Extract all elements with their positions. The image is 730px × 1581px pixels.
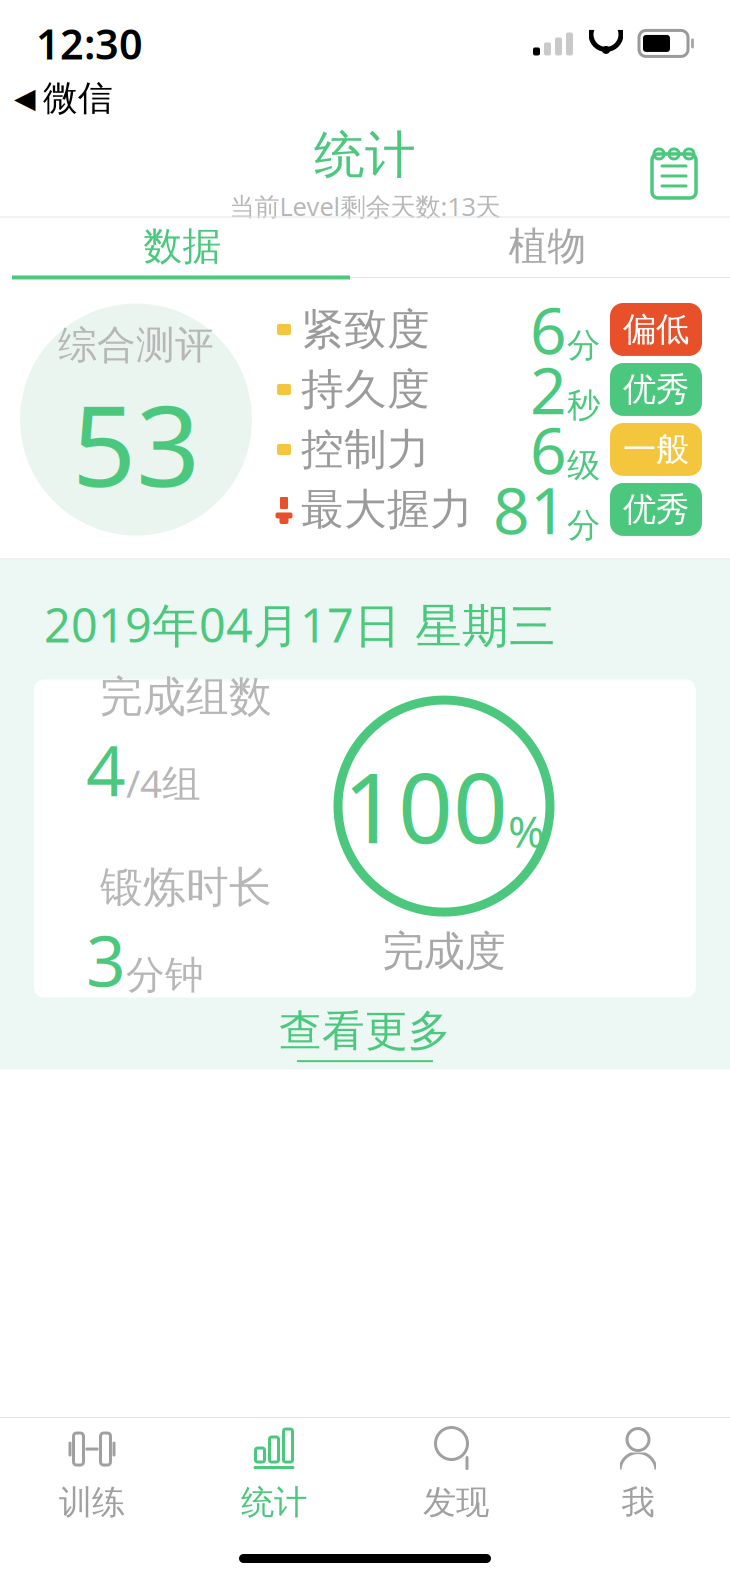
staticText: 完成组数 <box>100 671 272 723</box>
button[interactable]: 数据 <box>0 217 365 275</box>
button[interactable]: 发现 <box>365 1418 547 1530</box>
button[interactable]: 训练 <box>1 1418 183 1530</box>
staticText: 统计 <box>241 1482 307 1523</box>
staticText: 发现 <box>423 1482 489 1523</box>
staticText: 我 <box>621 1482 654 1523</box>
staticText: 级 <box>567 445 600 486</box>
staticText: 优秀 <box>623 369 689 410</box>
staticText: 4 <box>86 723 126 815</box>
staticText: 12:30 <box>36 16 143 71</box>
staticText: 植物 <box>508 223 586 270</box>
staticText: 当前Level剩余天数:13天 <box>229 189 500 223</box>
staticText: 3 <box>86 914 126 1006</box>
button[interactable]: 统计 <box>183 1418 365 1530</box>
staticText: 综合测评 <box>58 321 214 369</box>
staticText: 数据 <box>143 223 221 270</box>
staticText: 优秀 <box>623 489 689 530</box>
staticText: 2019年04月17日 星期三 <box>44 593 556 655</box>
staticText: 分 <box>567 505 600 546</box>
staticText: 统计 <box>314 124 416 186</box>
staticText: 秒 <box>567 385 600 426</box>
staticText: 控制力 <box>301 423 430 476</box>
staticText: 紧致度 <box>301 303 430 356</box>
staticText: 6 <box>530 287 567 372</box>
button[interactable]: 查看更多 <box>0 997 730 1069</box>
staticText: 2 <box>530 347 567 432</box>
staticText: 一般 <box>623 429 689 470</box>
staticText: 53 <box>72 369 200 518</box>
staticText: /4组 <box>126 757 201 808</box>
staticText: 分 <box>567 325 600 366</box>
staticText: 81 <box>493 467 567 552</box>
staticText: 微信 <box>43 77 113 119</box>
staticText: 查看更多 <box>279 1005 451 1057</box>
staticText: 分钟 <box>126 951 204 999</box>
staticText: 偏低 <box>623 309 689 350</box>
staticText: ◀ <box>14 82 36 114</box>
staticText: 锻炼时长 <box>100 861 272 914</box>
staticText: 训练 <box>59 1482 125 1523</box>
staticText: 100 <box>343 742 508 870</box>
staticText: 6 <box>530 407 567 492</box>
staticText: 完成度 <box>382 926 505 977</box>
button[interactable]: 植物 <box>365 217 730 275</box>
staticText: % <box>508 801 545 860</box>
button[interactable]: 训练记录 <box>642 141 730 205</box>
staticText: 最大握力 <box>301 483 473 536</box>
button[interactable]: 我 <box>547 1418 729 1530</box>
staticText: 持久度 <box>301 363 430 416</box>
